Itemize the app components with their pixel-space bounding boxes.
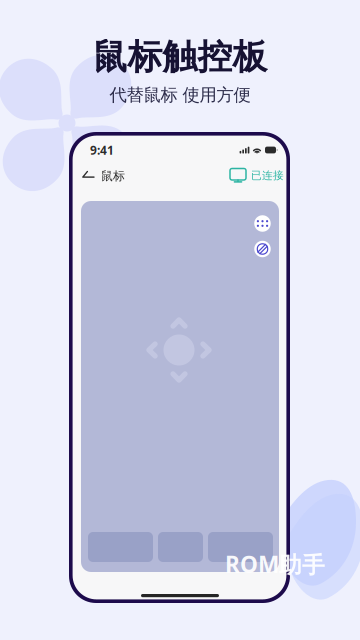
button[interactable]: 锁定 — [254, 240, 271, 257]
staticText: 9:41 — [90, 142, 114, 158]
button[interactable]: 小键盘 — [254, 215, 271, 232]
staticText: 代替鼠标 使用方便 — [109, 84, 250, 106]
staticText: 鼠标 — [101, 169, 125, 183]
staticText: ROM助手 — [225, 549, 325, 579]
button[interactable]: 返回 — [82, 167, 142, 185]
staticText: 已连接 — [251, 169, 284, 182]
staticText: 鼠标触控板 — [92, 36, 267, 78]
button[interactable]: 鼠标右键 — [208, 532, 273, 562]
button[interactable]: 已连接 — [214, 166, 284, 184]
